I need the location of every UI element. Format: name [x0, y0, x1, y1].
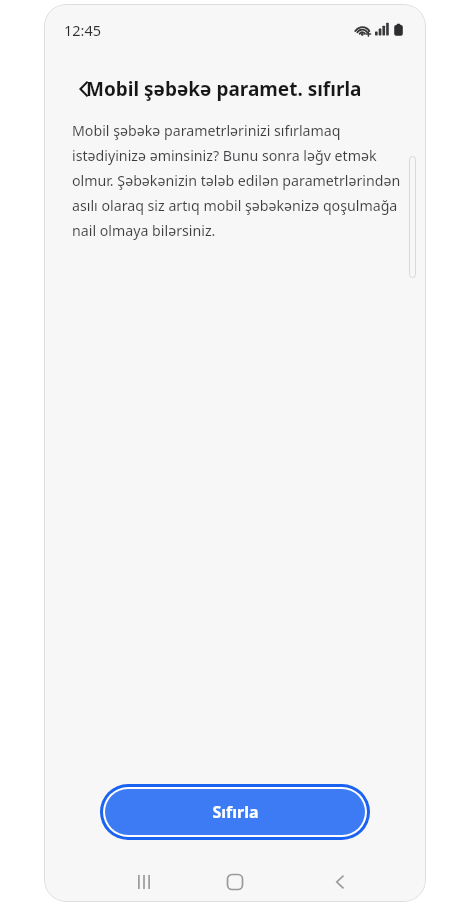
staticText: Mobil şəbəkə paramet. sıfırla — [86, 76, 362, 102]
button[interactable]: Recent apps — [120, 862, 168, 902]
button[interactable]: Home — [211, 862, 259, 902]
staticText: Mobil şəbəkə parametrlərinizi sıfırlamaq — [72, 121, 341, 140]
staticText: Sıfırla — [212, 801, 259, 823]
button[interactable]: Back — [66, 71, 102, 107]
staticText: asılı olaraq siz artıq mobil şəbəkənizə … — [72, 196, 398, 215]
staticText: nail olmaya bilərsiniz. — [72, 221, 216, 240]
staticText: istədiyinizə əminsiniz? Bunu sonra ləğv … — [72, 146, 377, 165]
button[interactable]: Back — [316, 862, 364, 902]
staticText: olmur. Şəbəkənizin tələb edilən parametr… — [72, 171, 401, 190]
button[interactable]: Sıfırla — [100, 784, 370, 840]
staticText: 12:45 — [64, 20, 102, 40]
